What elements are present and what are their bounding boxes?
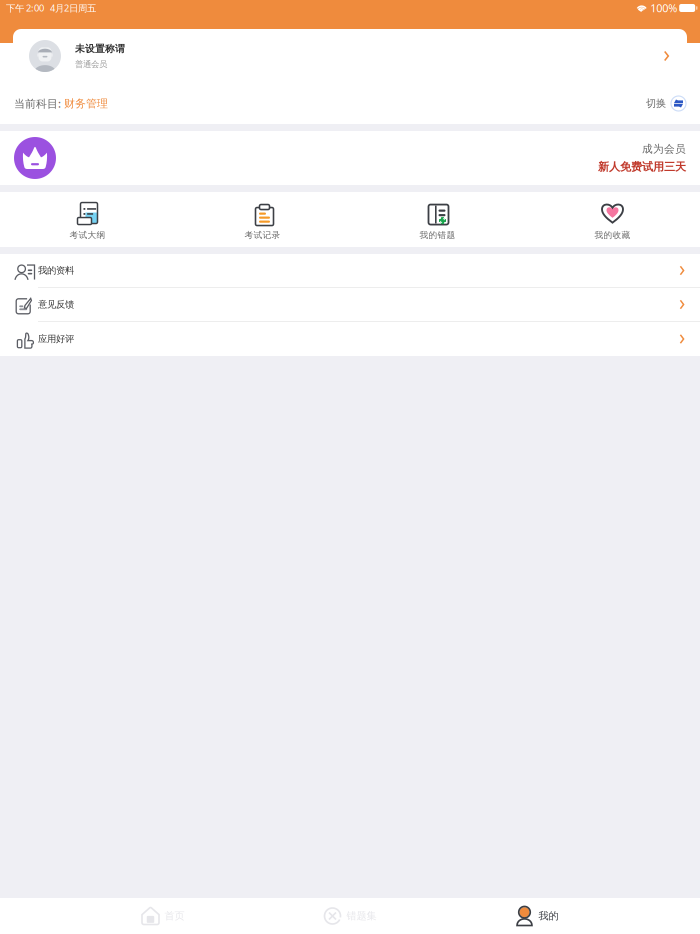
button[interactable]: 我的收藏 [525, 203, 700, 240]
button[interactable]: 未设置称谓 [13, 29, 687, 83]
staticText: 成为会员 [642, 142, 686, 156]
staticText: 当前科目: [14, 96, 64, 111]
button[interactable]: 考试大纲 [0, 203, 175, 240]
button[interactable]: 成为会员 [0, 131, 700, 185]
staticText: 我的 [538, 910, 558, 922]
button[interactable]: 首页 [69, 898, 256, 934]
staticText: 考试大纲 [69, 229, 105, 240]
button[interactable]: 应用好评 [0, 322, 700, 356]
staticText: 切换 [646, 97, 666, 110]
button[interactable]: 我的资料 [0, 254, 700, 288]
button[interactable]: 切换 [646, 96, 686, 111]
staticText: 新人免费试用三天 [598, 160, 686, 174]
staticText: 应用好评 [38, 333, 74, 345]
staticText: 未设置称谓 [75, 43, 125, 55]
staticText: 考试记录 [244, 229, 280, 240]
staticText: 普通会员 [75, 59, 107, 69]
button[interactable]: 错题集 [256, 898, 443, 934]
staticText: 100% [650, 1, 677, 15]
button[interactable]: 我的错题 [350, 203, 525, 240]
staticText: 财务管理 [64, 97, 108, 110]
staticText: 我的收藏 [594, 229, 630, 240]
staticText: 我的错题 [419, 229, 455, 240]
button[interactable]: 我的 [443, 898, 630, 934]
staticText: 我的资料 [38, 265, 74, 276]
button[interactable]: 意见反馈 [0, 288, 700, 322]
staticText: 首页 [164, 910, 184, 922]
staticText: 下午 2:00 4月2日周五 [6, 2, 96, 14]
button[interactable]: 考试记录 [175, 203, 350, 240]
staticText: 错题集 [346, 910, 376, 922]
staticText: 意见反馈 [38, 299, 74, 310]
